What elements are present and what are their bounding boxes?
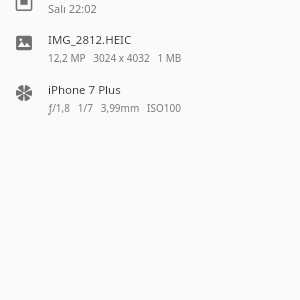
button[interactable]: Image details [0, 24, 300, 76]
other: Image details [15, 34, 33, 52]
button[interactable]: Camera details [0, 76, 300, 128]
other: Camera details [15, 84, 33, 102]
staticText: IMG_2812.HEIC [48, 32, 132, 48]
staticText: ƒ/1,8 1/7 3,99mm ISO100 [48, 101, 181, 115]
staticText: 12,2 MP 3024 x 4032 1 MB [48, 51, 182, 65]
other: Date [15, 0, 33, 12]
staticText: iPhone 7 Plus [48, 82, 121, 98]
staticText: Salı 22:02 [48, 1, 97, 16]
button[interactable]: Date [0, 0, 300, 24]
